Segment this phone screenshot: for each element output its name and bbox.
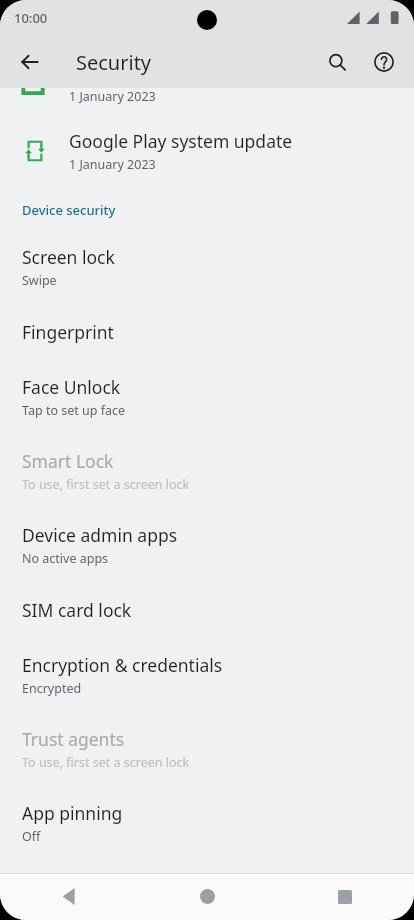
staticText: 1 January 2023 <box>69 88 156 105</box>
staticText: App pinning <box>22 801 123 825</box>
button[interactable]: Back <box>8 40 52 84</box>
staticText: Tap to set up face <box>22 402 126 419</box>
staticText: Security <box>76 49 152 76</box>
staticText: Trust agents <box>22 727 125 751</box>
button[interactable]: Smart Lock <box>0 434 414 508</box>
staticText: To use, first set a screen lock <box>22 476 190 493</box>
button[interactable]: Device admin apps <box>0 508 414 582</box>
button[interactable]: Recent apps <box>276 873 414 920</box>
button[interactable]: Encryption & credentials <box>0 638 414 712</box>
button[interactable]: SIM card lock <box>0 582 414 638</box>
button[interactable]: App pinning <box>0 786 414 860</box>
button[interactable]: Google Play system update <box>0 112 414 190</box>
staticText: 10:00 <box>14 9 48 27</box>
staticText: Google Play system update <box>69 129 293 153</box>
button[interactable]: Home <box>138 873 276 920</box>
staticText: Screen lock <box>22 245 115 269</box>
staticText: Off <box>22 828 41 845</box>
staticText: No active apps <box>22 550 109 567</box>
button[interactable]: 1 January 2023 <box>0 88 414 112</box>
staticText: Face Unlock <box>22 375 121 399</box>
staticText: Device admin apps <box>22 523 178 547</box>
staticText: SIM card lock <box>22 598 132 622</box>
staticText: Device security <box>22 201 116 219</box>
staticText: Swipe <box>22 272 57 289</box>
staticText: To use, first set a screen lock <box>22 754 190 771</box>
button[interactable]: Face Unlock <box>0 360 414 434</box>
button[interactable]: Fingerprint <box>0 304 414 360</box>
button[interactable]: Help <box>362 40 406 84</box>
button[interactable]: Search <box>315 40 359 84</box>
button[interactable]: Trust agents <box>0 712 414 786</box>
button[interactable]: Back <box>0 873 138 920</box>
staticText: Fingerprint <box>22 320 114 344</box>
button[interactable]: Screen lock <box>0 230 414 304</box>
staticText: 1 January 2023 <box>69 156 156 173</box>
staticText: Encrypted <box>22 680 82 697</box>
staticText: Smart Lock <box>22 449 114 473</box>
staticText: Encryption & credentials <box>22 653 223 677</box>
